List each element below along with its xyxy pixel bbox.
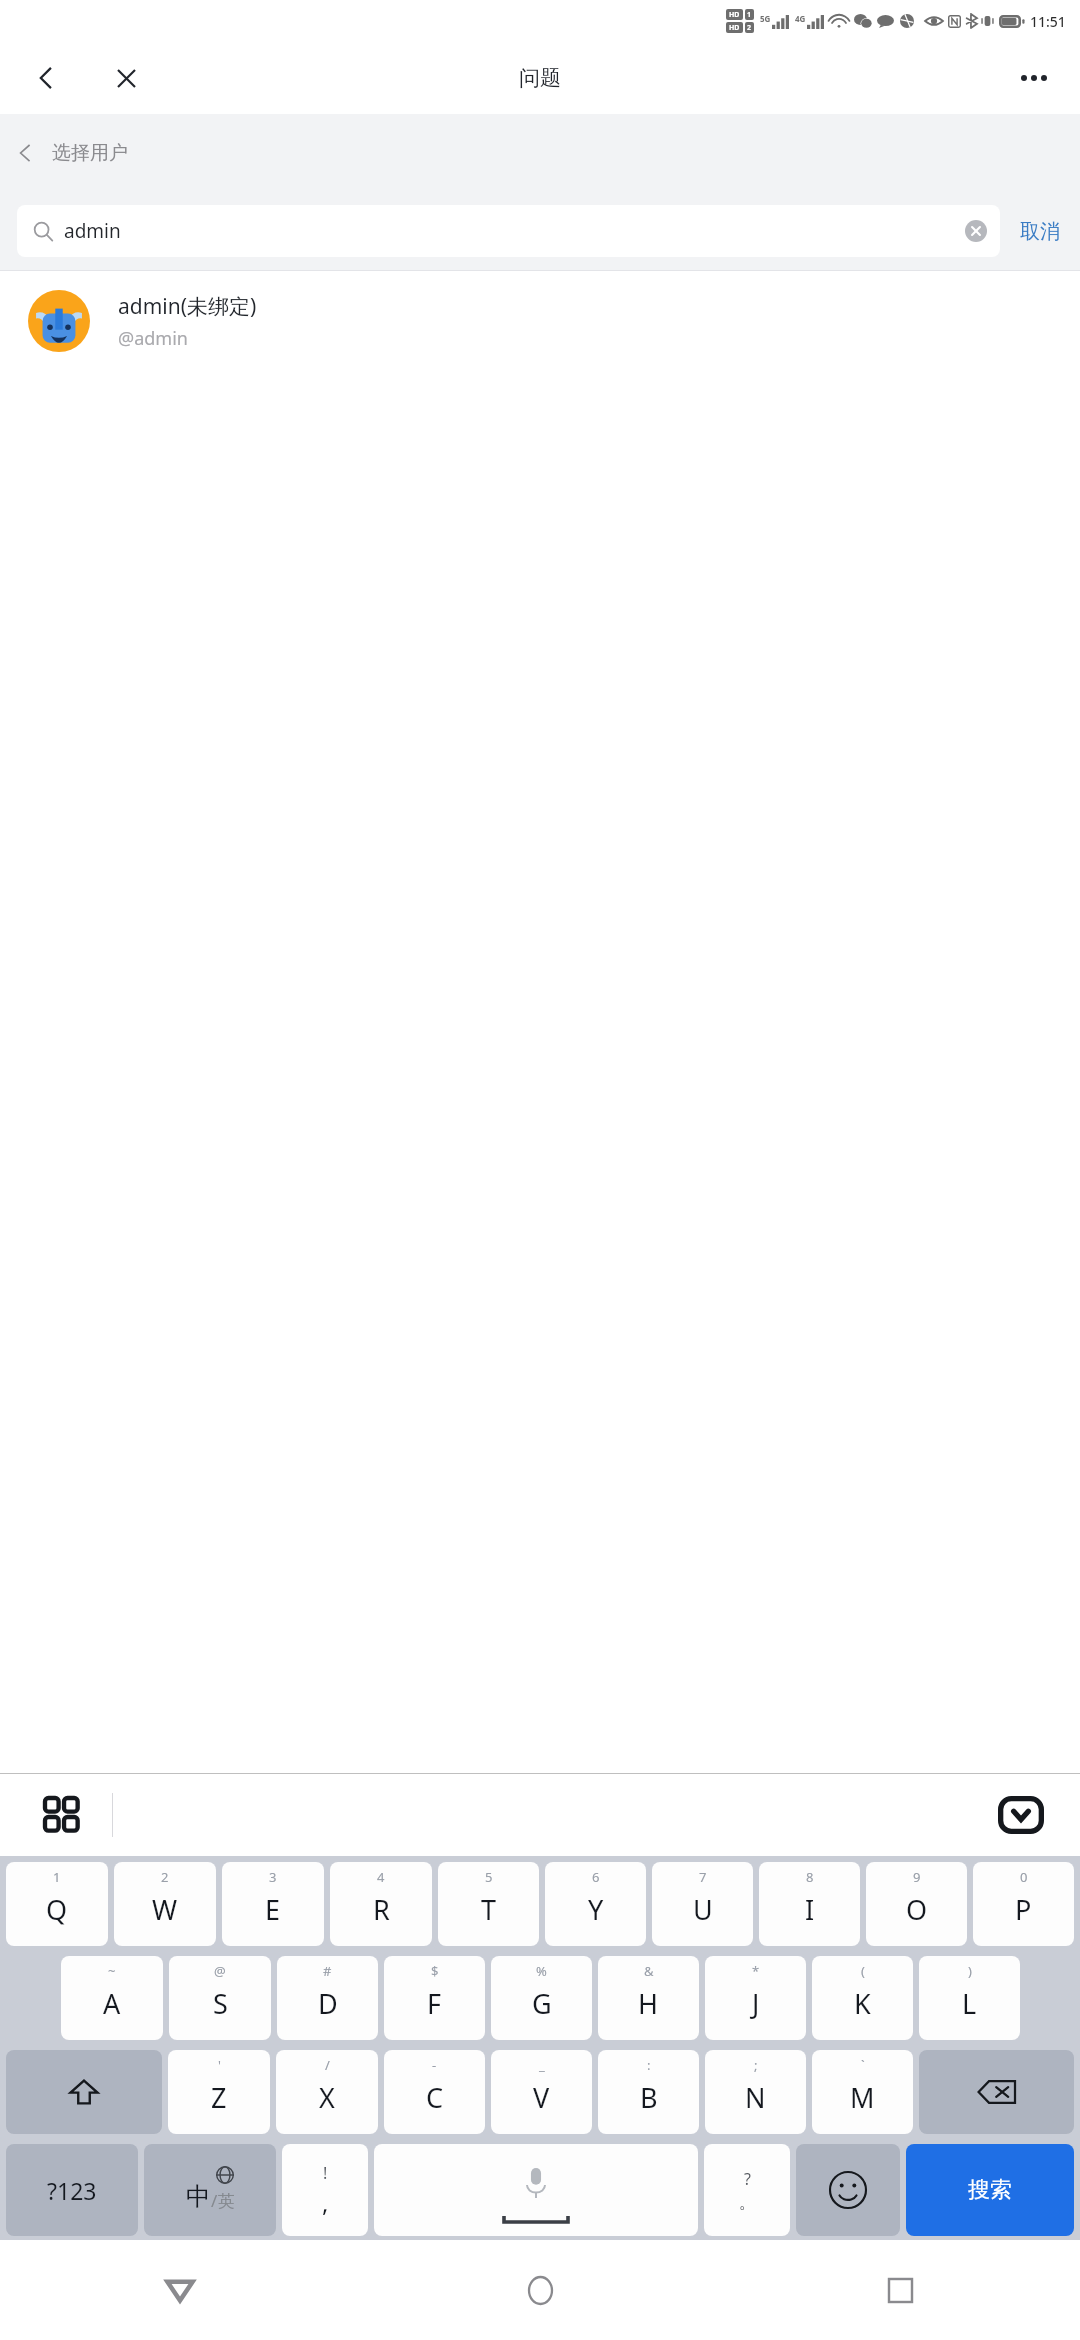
staticText: T: [481, 1891, 497, 1928]
button[interactable]: !: [282, 2144, 368, 2236]
button[interactable]: 8: [759, 1862, 860, 1946]
staticText: ?: [744, 2168, 751, 2190]
button[interactable]: -: [384, 2050, 485, 2134]
button[interactable]: 3: [222, 1862, 324, 1946]
staticText: %: [536, 1962, 547, 1980]
button[interactable]: admin: [17, 205, 1000, 257]
button[interactable]: /: [276, 2050, 378, 2134]
button[interactable]: ): [919, 1956, 1020, 2040]
button[interactable]: :: [598, 2050, 699, 2134]
staticText: 。: [739, 2192, 756, 2213]
staticText: !: [323, 2162, 328, 2184]
staticText: E: [265, 1891, 281, 1928]
button[interactable]: More options: [1010, 54, 1058, 102]
staticText: K: [854, 1985, 871, 2022]
button[interactable]: Emoji: [796, 2144, 900, 2236]
staticText: H: [638, 1985, 659, 2022]
button[interactable]: 2: [114, 1862, 216, 1946]
staticText: @admin: [118, 326, 188, 351]
staticText: 11:51: [1030, 12, 1066, 31]
staticText: S: [213, 1985, 228, 2022]
button[interactable]: (: [812, 1956, 913, 2040]
staticText: 5: [485, 1868, 493, 1886]
staticText: G: [532, 1985, 552, 2022]
button[interactable]: $: [384, 1956, 485, 2040]
button[interactable]: 6: [545, 1862, 646, 1946]
staticText: ): [968, 1962, 972, 1980]
staticText: 中: [186, 2181, 211, 2212]
button[interactable]: Backspace: [919, 2050, 1074, 2134]
staticText: 搜索: [968, 2176, 1012, 2204]
staticText: Q: [46, 1891, 68, 1928]
staticText: ;: [754, 2056, 758, 2074]
staticText: N: [745, 2079, 766, 2116]
staticText: 2: [747, 23, 752, 33]
staticText: admin(未绑定): [118, 292, 257, 321]
staticText: D: [318, 1985, 338, 2022]
staticText: V: [533, 2079, 550, 2116]
staticText: X: [319, 2079, 335, 2116]
button[interactable]: 4: [330, 1862, 432, 1946]
staticText: 7: [699, 1868, 707, 1886]
staticText: 6: [592, 1868, 600, 1886]
staticText: A: [103, 1985, 121, 2022]
button[interactable]: 0: [973, 1862, 1074, 1946]
button[interactable]: Keyboard layouts: [34, 1787, 90, 1843]
button[interactable]: 中: [144, 2144, 276, 2236]
button[interactable]: 1: [6, 1862, 108, 1946]
button[interactable]: ': [168, 2050, 270, 2134]
button[interactable]: Clear text: [956, 211, 996, 251]
button[interactable]: Home: [360, 2240, 720, 2340]
staticText: HD: [729, 23, 740, 33]
button[interactable]: #: [277, 1956, 378, 2040]
staticText: $: [431, 1962, 439, 1980]
button[interactable]: @: [169, 1956, 271, 2040]
button[interactable]: Back: [22, 54, 70, 102]
staticText: admin: [64, 218, 121, 244]
staticText: C: [426, 2079, 444, 2116]
button[interactable]: Back: [0, 2240, 360, 2340]
staticText: P: [1015, 1891, 1032, 1928]
button[interactable]: *: [705, 1956, 806, 2040]
staticText: /: [211, 2189, 218, 2212]
staticText: 8: [806, 1868, 814, 1886]
staticText: #: [323, 1962, 332, 1980]
staticText: B: [640, 2079, 658, 2116]
button[interactable]: 取消: [1004, 201, 1076, 261]
button[interactable]: Recents: [720, 2240, 1080, 2340]
staticText: *: [752, 1962, 760, 1980]
button[interactable]: &: [598, 1956, 699, 2040]
staticText: 4: [377, 1868, 385, 1886]
button[interactable]: %: [491, 1956, 592, 2040]
button[interactable]: 选择用户: [0, 114, 1080, 192]
staticText: 英: [218, 2191, 235, 2212]
staticText: J: [752, 1985, 760, 2022]
button[interactable]: ?123: [6, 2144, 138, 2236]
staticText: /: [325, 2056, 330, 2074]
staticText: O: [906, 1891, 928, 1928]
button[interactable]: Space: [374, 2144, 698, 2236]
button[interactable]: ;: [705, 2050, 806, 2134]
button[interactable]: ?: [704, 2144, 790, 2236]
button[interactable]: admin(未绑定): [0, 271, 1080, 371]
staticText: @: [214, 1962, 226, 1980]
button[interactable]: Hide keyboard: [992, 1786, 1050, 1844]
staticText: ,: [322, 2186, 329, 2219]
staticText: (: [861, 1962, 865, 1980]
button[interactable]: _: [491, 2050, 592, 2134]
button[interactable]: ~: [61, 1956, 163, 2040]
staticText: 1: [53, 1868, 61, 1886]
staticText: R: [373, 1891, 390, 1928]
button[interactable]: 5: [438, 1862, 539, 1946]
staticText: HD: [729, 10, 740, 20]
staticText: Z: [211, 2079, 227, 2116]
button[interactable]: `: [812, 2050, 913, 2134]
button[interactable]: 搜索: [906, 2144, 1074, 2236]
button[interactable]: Close: [102, 54, 150, 102]
staticText: ~: [108, 1962, 116, 1980]
staticText: 选择用户: [52, 141, 128, 165]
staticText: 9: [913, 1868, 921, 1886]
button[interactable]: 9: [866, 1862, 967, 1946]
button[interactable]: 7: [652, 1862, 753, 1946]
button[interactable]: Shift: [6, 2050, 162, 2134]
